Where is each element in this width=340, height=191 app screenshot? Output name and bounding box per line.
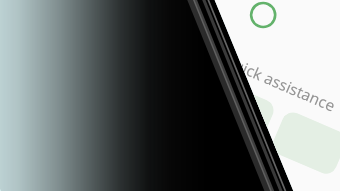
button[interactable]: Phone showing Quick assistance screen bbox=[0, 0, 340, 191]
